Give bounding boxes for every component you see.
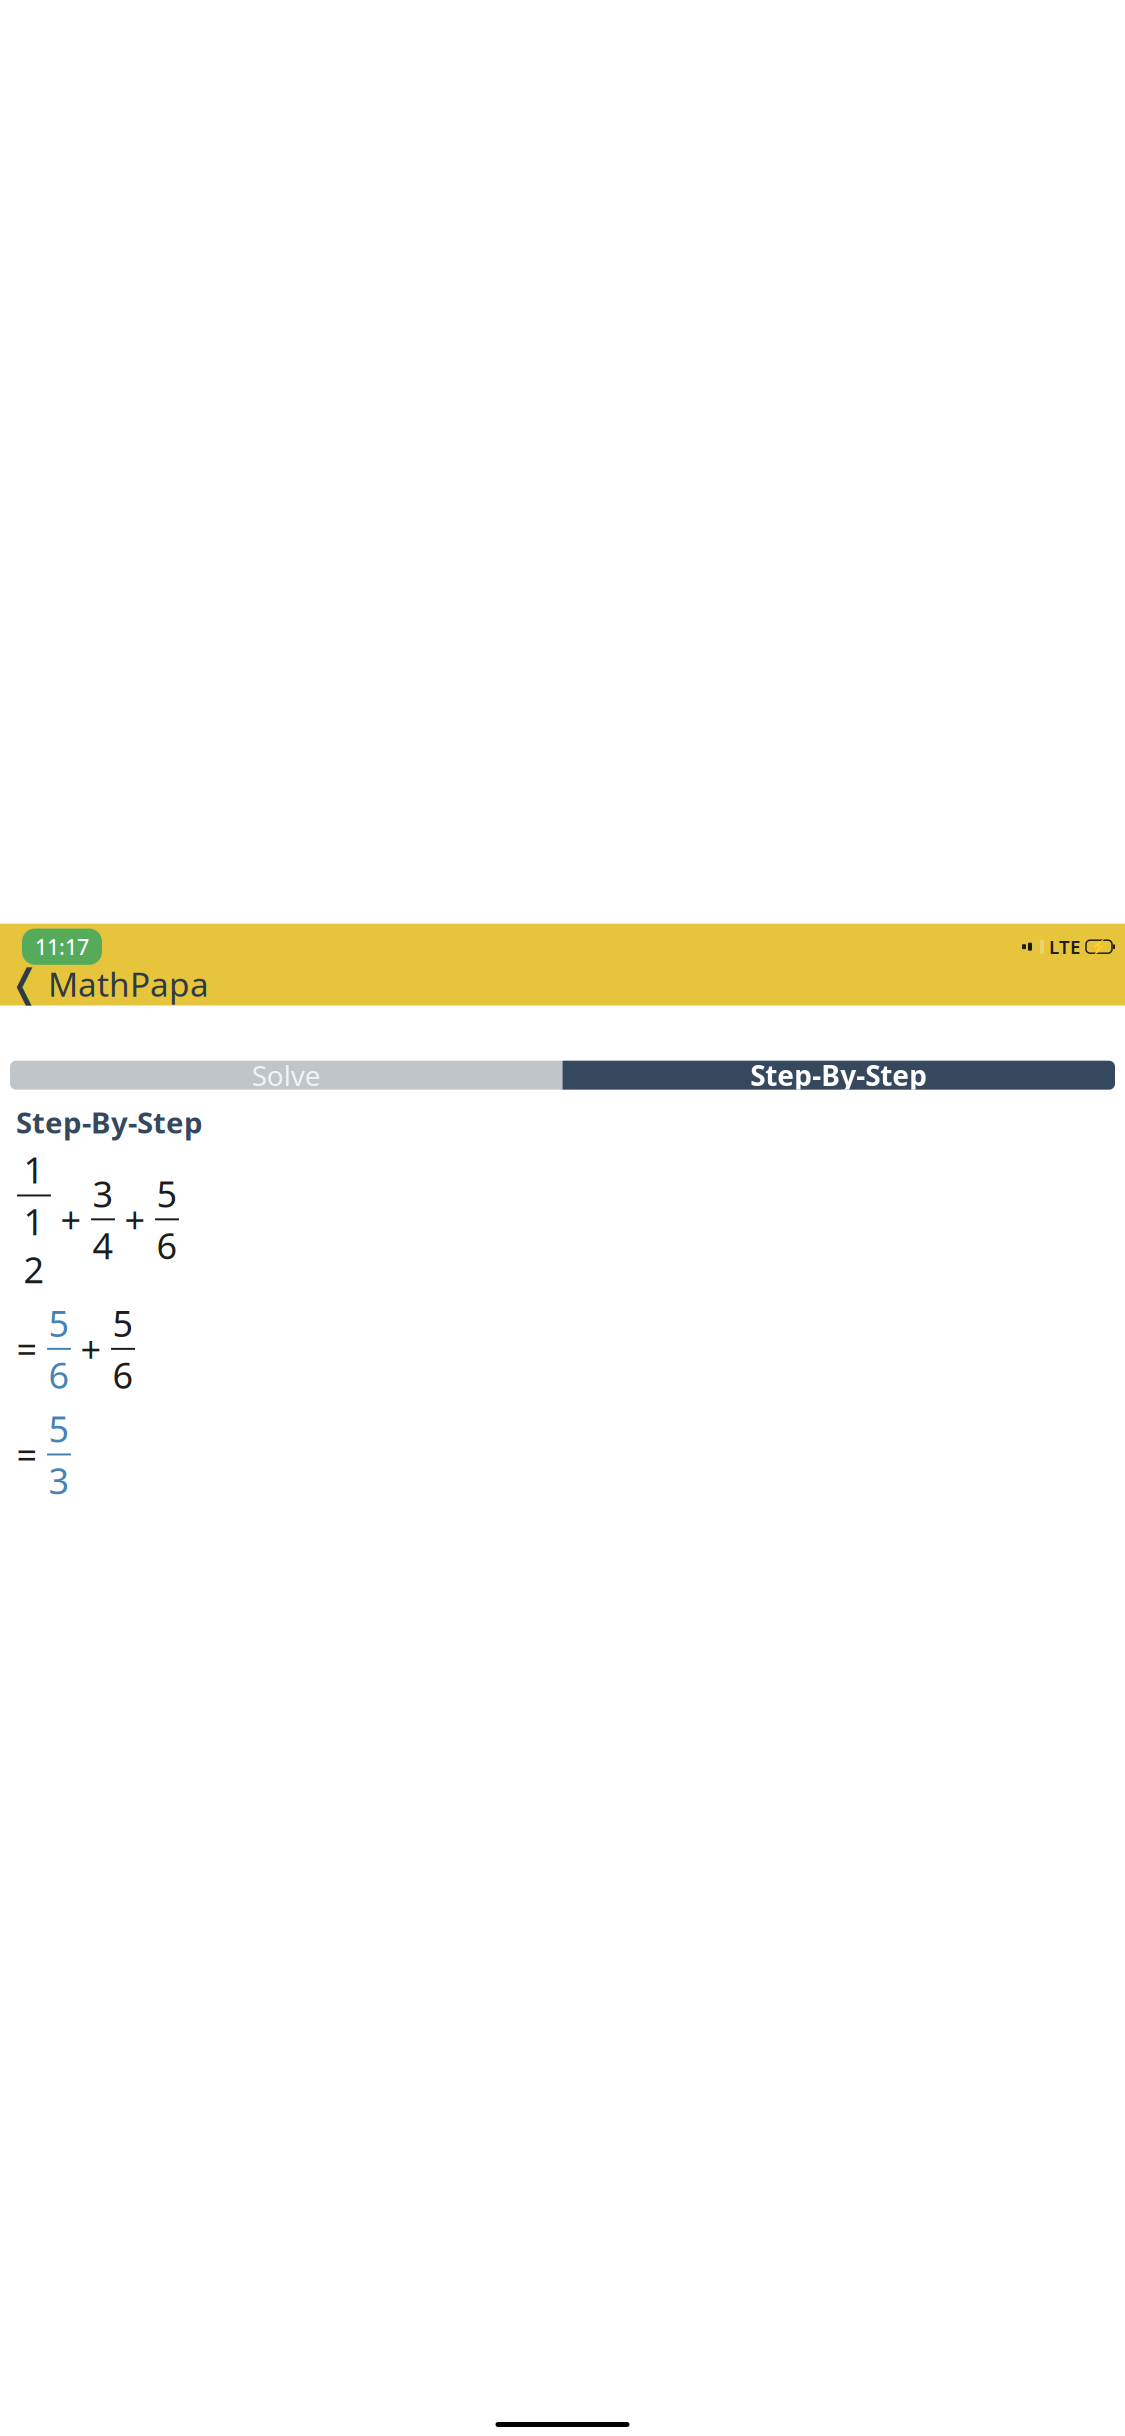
staticText: 6 <box>156 1221 177 1269</box>
staticText: + <box>60 1195 81 1243</box>
staticText: Step-By-Step <box>750 1057 927 1094</box>
button[interactable]: Step-By-Step <box>562 1061 1115 1090</box>
button[interactable]: Solve <box>10 1061 562 1090</box>
staticText: Step-By-Step <box>16 1103 203 1142</box>
staticText: 5 <box>48 1405 69 1452</box>
staticText: 4 <box>92 1221 113 1269</box>
staticText: 6 <box>48 1351 69 1399</box>
staticText: + <box>80 1325 101 1373</box>
button[interactable]: ❬ <box>0 955 223 1012</box>
staticText: ❬ <box>8 961 42 1006</box>
staticText: Solve <box>252 1057 321 1094</box>
staticText: 1 <box>23 1146 44 1193</box>
staticText: MathPapa <box>48 962 209 1006</box>
staticText: 5 <box>156 1170 177 1217</box>
staticText: ⚡ <box>1090 938 1108 955</box>
staticText: = <box>16 1325 37 1373</box>
staticText: 5 <box>112 1299 133 1347</box>
staticText: + <box>124 1195 145 1243</box>
staticText: 12 <box>23 1197 44 1293</box>
staticText: = <box>16 1431 37 1478</box>
staticText: 3 <box>92 1170 113 1217</box>
staticText: 11:17 <box>35 932 89 961</box>
staticText: 5 <box>48 1299 69 1347</box>
staticText: 3 <box>48 1456 69 1504</box>
staticText: 6 <box>112 1351 133 1399</box>
staticText: LTE <box>1049 934 1080 959</box>
